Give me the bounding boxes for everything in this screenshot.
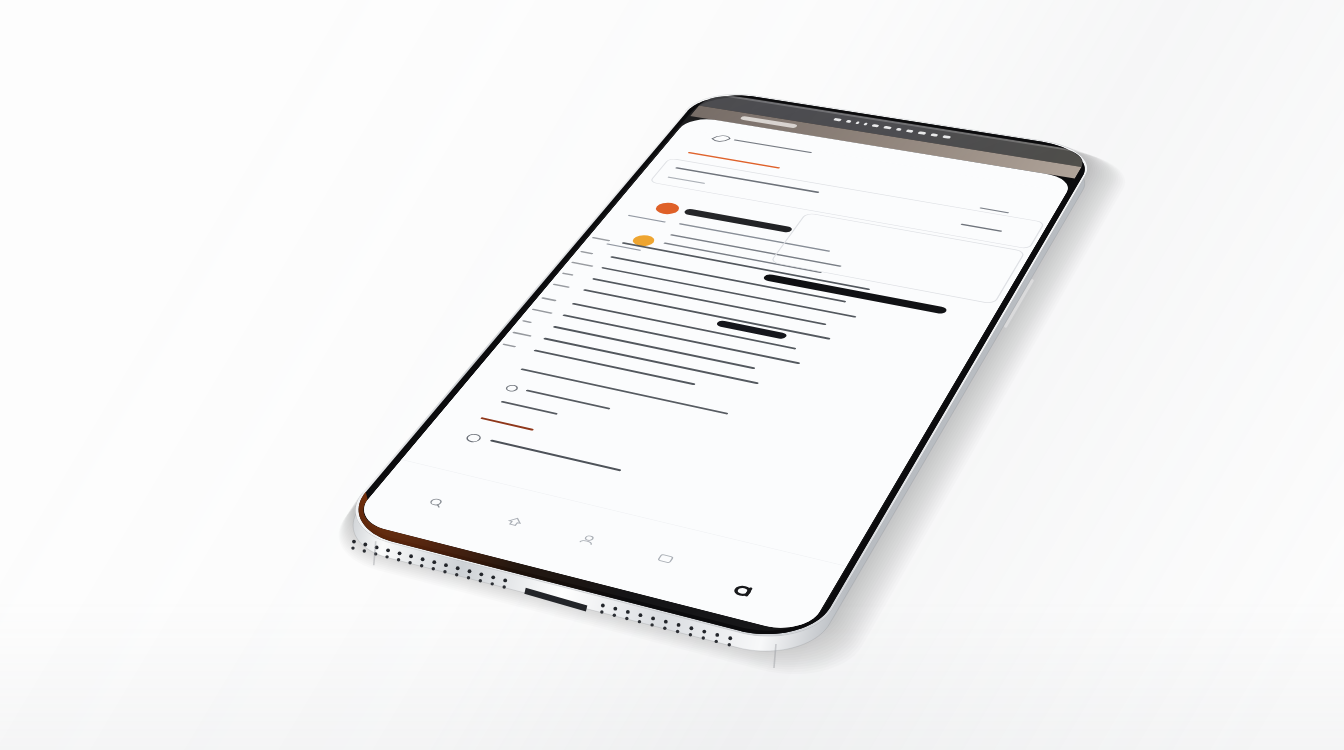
button[interactable]: First list item [627,190,1004,281]
button[interactable]: Second list item [603,217,987,313]
button[interactable]: App bar [688,107,1072,186]
button[interactable]: Library tab [629,542,702,583]
button[interactable]: Profile tab [553,522,625,561]
button[interactable]: Compose [704,566,784,615]
button[interactable]: Search field [649,158,1036,247]
button[interactable]: Home tab [481,503,552,541]
button[interactable]: Search tab [403,484,473,521]
button[interactable]: Featured card [770,212,1024,303]
